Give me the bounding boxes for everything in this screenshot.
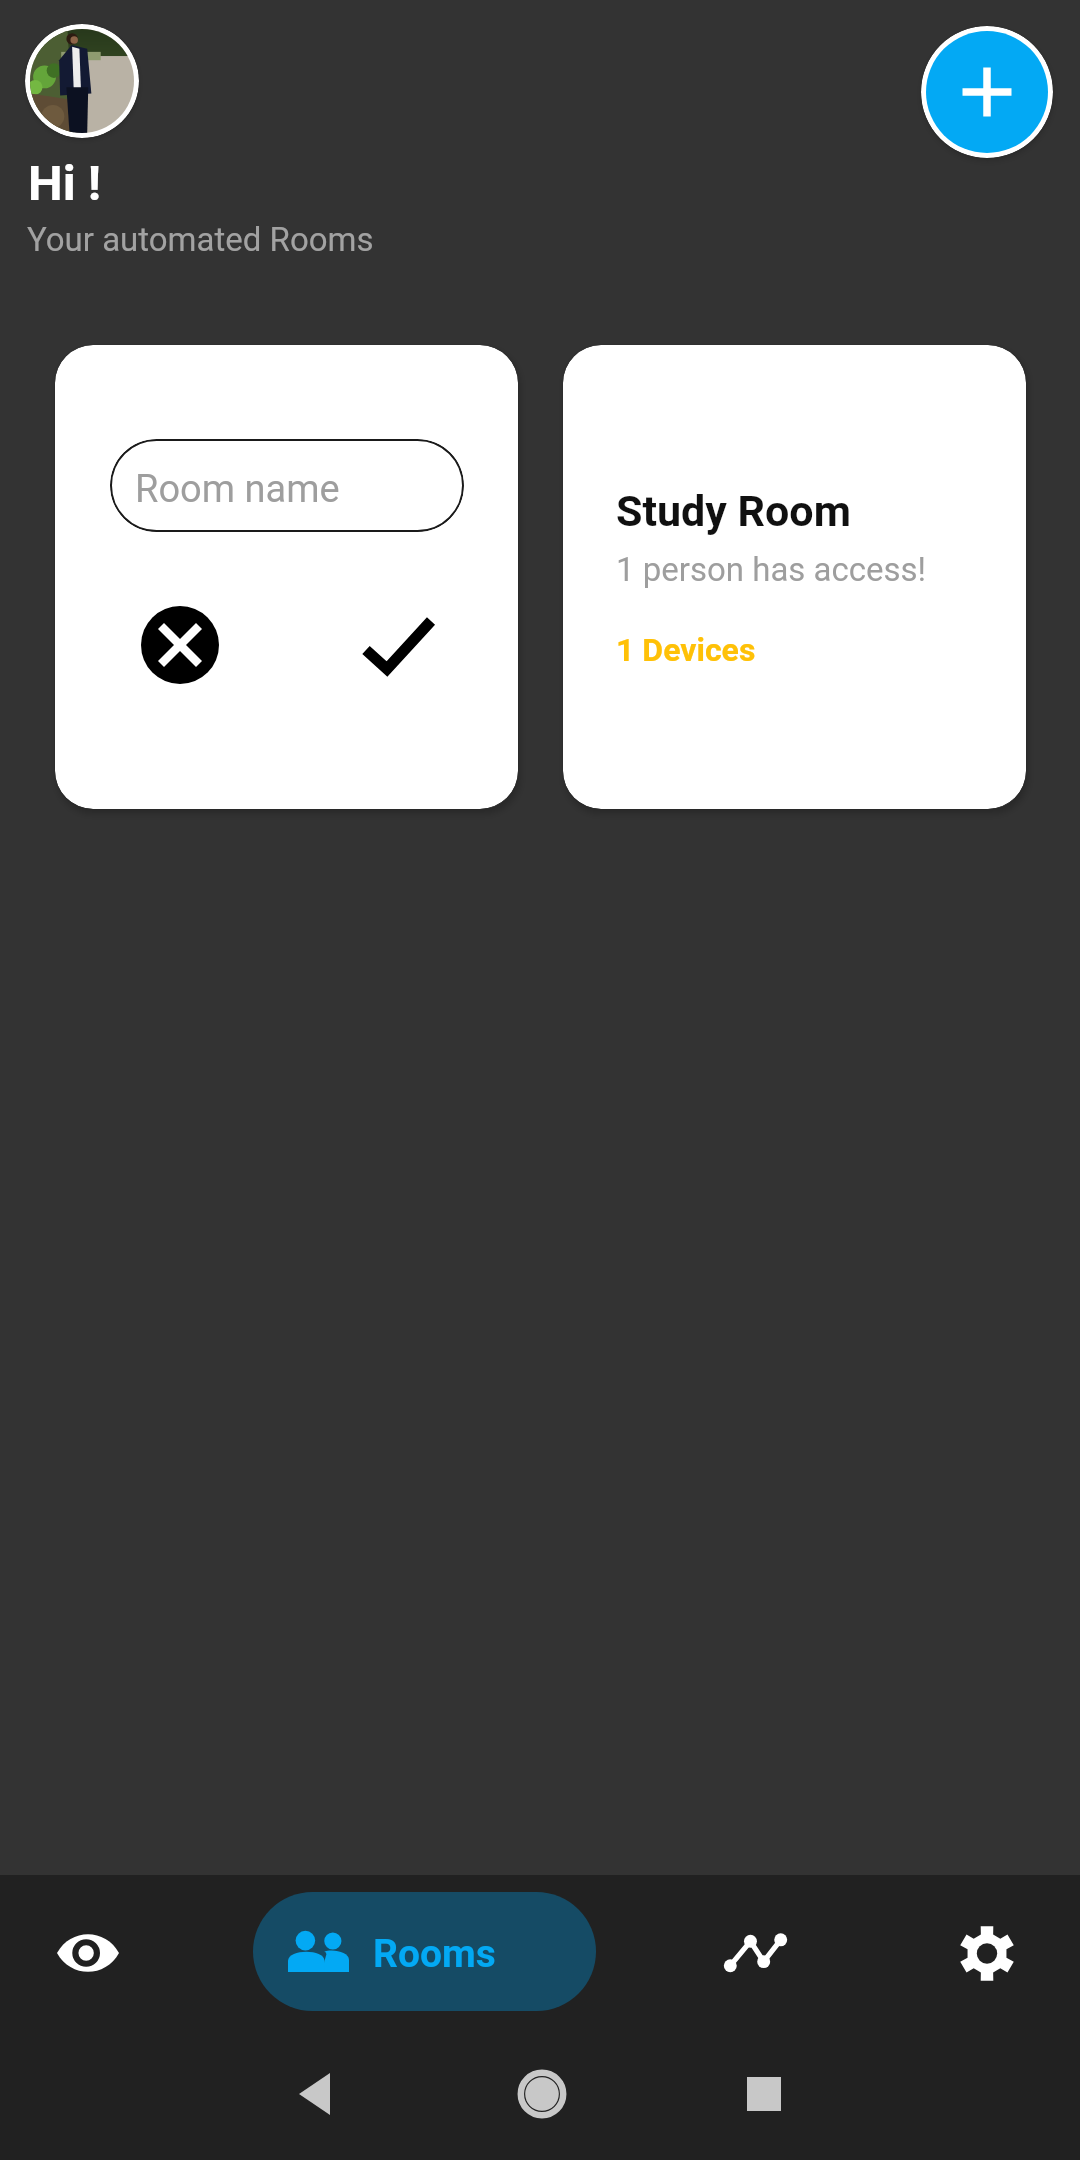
button[interactable]: Rooms (253, 1892, 596, 2011)
button[interactable]: Add room (921, 26, 1053, 158)
button[interactable]: Cancel (141, 606, 219, 684)
button[interactable]: Confirm (353, 608, 447, 684)
staticText: 1 Devices (616, 631, 756, 669)
button[interactable]: Statistics (690, 1893, 820, 2013)
button[interactable]: Profile (25, 24, 139, 138)
button[interactable]: Study Room (563, 345, 1026, 809)
button[interactable]: Room name (110, 439, 464, 532)
staticText: Your automated Rooms (27, 220, 374, 259)
staticText: Rooms (373, 1931, 496, 1977)
staticText: 1 person has access! (616, 550, 927, 589)
button[interactable]: Settings (927, 1893, 1047, 2013)
button[interactable]: Room name (55, 345, 518, 809)
button[interactable]: Overview (18, 1893, 158, 2013)
staticText: Hi ! (28, 155, 102, 212)
staticText: Study Room (616, 486, 851, 536)
staticText: Room name (135, 467, 340, 512)
